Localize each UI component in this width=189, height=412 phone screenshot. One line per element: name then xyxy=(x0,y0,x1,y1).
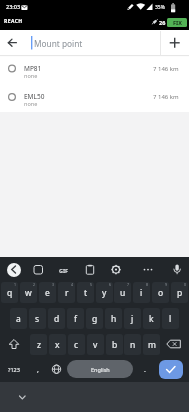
button[interactable]: g xyxy=(86,308,103,329)
button[interactable] xyxy=(159,360,183,379)
staticText: 6 xyxy=(109,282,112,287)
button[interactable]: n xyxy=(124,334,141,355)
staticText: 9 xyxy=(165,282,168,287)
button[interactable]: i xyxy=(133,282,150,303)
staticText: 35% xyxy=(155,4,165,11)
button[interactable] xyxy=(7,263,21,277)
staticText: t xyxy=(84,287,88,299)
staticText: 8 xyxy=(146,282,149,287)
staticText: 1 xyxy=(14,282,17,287)
staticText: v xyxy=(93,339,98,351)
staticText: n xyxy=(130,339,136,351)
button[interactable]: q xyxy=(1,282,18,303)
button[interactable]: , xyxy=(29,359,46,380)
staticText: 7 146 km xyxy=(153,93,179,101)
button[interactable]: y xyxy=(96,282,113,303)
staticText: d xyxy=(54,313,60,325)
button[interactable]: r xyxy=(58,282,75,303)
button[interactable]: English xyxy=(67,360,133,378)
staticText: MP81 xyxy=(24,64,42,73)
button[interactable] xyxy=(161,30,189,56)
staticText: English xyxy=(91,366,110,373)
button[interactable] xyxy=(29,261,47,279)
button[interactable]: s xyxy=(29,308,46,329)
button[interactable]: b xyxy=(106,334,123,355)
staticText: FIX xyxy=(173,19,182,26)
button[interactable]: w xyxy=(20,282,37,303)
staticText: k xyxy=(149,313,154,325)
staticText: s xyxy=(35,313,40,325)
button[interactable] xyxy=(0,84,189,112)
button[interactable]: j xyxy=(124,308,141,329)
staticText: z xyxy=(37,339,41,351)
staticText: . xyxy=(144,365,146,375)
staticText: j xyxy=(131,313,134,325)
button[interactable]: u xyxy=(114,282,131,303)
staticText: f xyxy=(74,313,77,325)
staticText: x xyxy=(55,339,60,351)
button[interactable]: e xyxy=(39,282,56,303)
button[interactable] xyxy=(107,261,125,279)
button[interactable]: t xyxy=(77,282,94,303)
staticText: 7 146 km xyxy=(153,65,179,73)
staticText: GIF xyxy=(59,267,69,274)
staticText: h xyxy=(111,313,117,325)
button[interactable] xyxy=(81,261,99,279)
staticText: 5 xyxy=(90,282,93,287)
staticText: 7 xyxy=(127,282,130,287)
button[interactable]: d xyxy=(48,308,65,329)
button[interactable]: . xyxy=(136,359,153,380)
staticText: q xyxy=(7,287,13,299)
button[interactable]: f xyxy=(67,308,84,329)
button[interactable]: ?123 xyxy=(1,359,27,380)
button[interactable] xyxy=(0,30,26,56)
button[interactable] xyxy=(0,56,189,84)
button[interactable] xyxy=(139,261,157,279)
staticText: Mount point xyxy=(34,38,83,49)
staticText: 3 xyxy=(52,282,55,287)
button[interactable] xyxy=(162,334,188,355)
staticText: u xyxy=(120,287,126,299)
button[interactable]: h xyxy=(105,308,122,329)
button[interactable]: a xyxy=(10,308,27,329)
staticText: 0 xyxy=(184,282,187,287)
staticText: none xyxy=(24,100,38,107)
staticText: g xyxy=(92,313,98,325)
staticText: a xyxy=(16,313,21,325)
staticText: none xyxy=(24,72,38,79)
staticText: r xyxy=(65,287,69,299)
staticText: 4 xyxy=(71,282,74,287)
button[interactable]: k xyxy=(143,308,160,329)
staticText: REACH xyxy=(4,18,23,25)
staticText: 26 xyxy=(159,19,166,26)
button[interactable] xyxy=(48,359,65,380)
button[interactable]: v xyxy=(87,334,104,355)
button[interactable] xyxy=(168,261,186,279)
staticText: y xyxy=(102,287,107,299)
button[interactable] xyxy=(55,261,73,279)
staticText: , xyxy=(37,365,39,375)
button[interactable]: o xyxy=(152,282,169,303)
button[interactable]: x xyxy=(49,334,66,355)
staticText: 23:03 xyxy=(6,3,21,10)
staticText: o xyxy=(158,287,164,299)
staticText: i xyxy=(140,287,143,299)
staticText: b xyxy=(112,339,118,351)
button[interactable]: p xyxy=(171,282,188,303)
staticText: w xyxy=(25,287,32,299)
staticText: EML50 xyxy=(24,92,45,101)
button[interactable]: l xyxy=(162,308,179,329)
button[interactable] xyxy=(1,334,27,355)
button[interactable]: c xyxy=(68,334,85,355)
staticText: c xyxy=(74,339,79,351)
staticText: l xyxy=(169,313,172,325)
staticText: m xyxy=(148,339,156,351)
staticText: 2 xyxy=(33,282,36,287)
button[interactable]: z xyxy=(30,334,47,355)
staticText: e xyxy=(45,287,50,299)
staticText: ?123 xyxy=(8,366,20,373)
button[interactable]: m xyxy=(143,334,160,355)
staticText: p xyxy=(177,287,183,299)
